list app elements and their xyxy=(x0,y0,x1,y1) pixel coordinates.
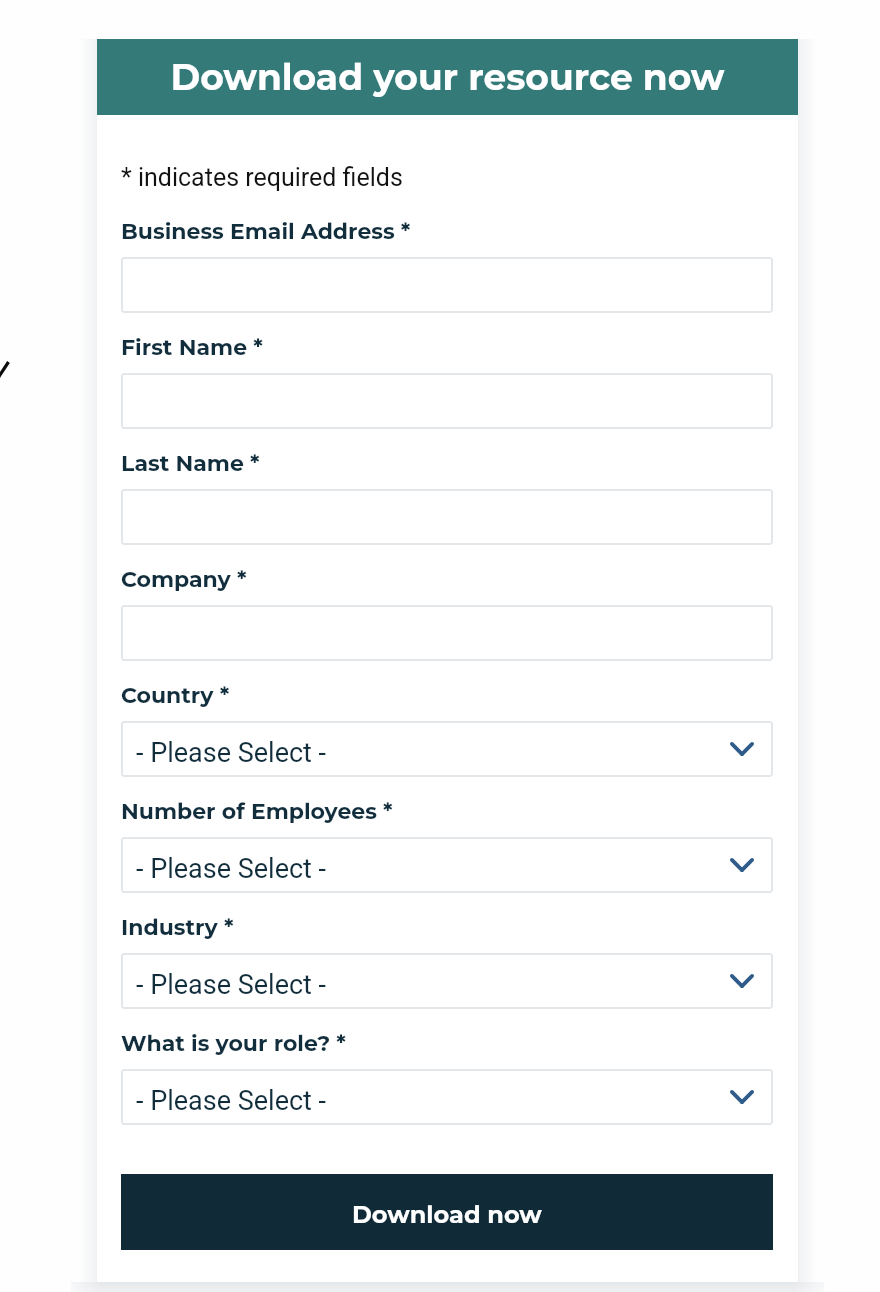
staticText: * indicates required fields xyxy=(121,163,403,192)
button[interactable]: Country, select an option xyxy=(121,721,773,777)
staticText: Business Email Address * xyxy=(121,218,411,245)
staticText: Download now xyxy=(352,1200,542,1229)
staticText: Company * xyxy=(121,566,247,593)
staticText: Number of Employees * xyxy=(121,798,393,825)
staticText: Industry * xyxy=(121,914,234,941)
button[interactable]: Last Name, text field xyxy=(121,489,773,545)
button[interactable]: Company, text field xyxy=(121,605,773,661)
button[interactable]: What is your role?, select an option xyxy=(121,1069,773,1125)
staticText: - Please Select - xyxy=(136,853,327,885)
button[interactable]: Download now xyxy=(121,1174,773,1250)
other: Open Industry list xyxy=(730,974,754,988)
other: Open What is your role? list xyxy=(730,1090,754,1104)
other: Open Country list xyxy=(730,742,754,756)
staticText: - Please Select - xyxy=(136,737,327,769)
button[interactable]: First Name, text field xyxy=(121,373,773,429)
staticText: Country * xyxy=(121,682,230,709)
button[interactable]: Industry, select an option xyxy=(121,953,773,1009)
staticText: Download your resource now xyxy=(170,55,725,99)
other: Open Number of Employees list xyxy=(730,858,754,872)
button[interactable]: Number of Employees, select an option xyxy=(121,837,773,893)
staticText: - Please Select - xyxy=(136,969,327,1001)
staticText: What is your role? * xyxy=(121,1030,346,1057)
button[interactable]: Business Email Address, text field xyxy=(121,257,773,313)
staticText: - Please Select - xyxy=(136,1085,327,1117)
staticText: Last Name * xyxy=(121,450,260,477)
staticText: First Name * xyxy=(121,334,263,361)
